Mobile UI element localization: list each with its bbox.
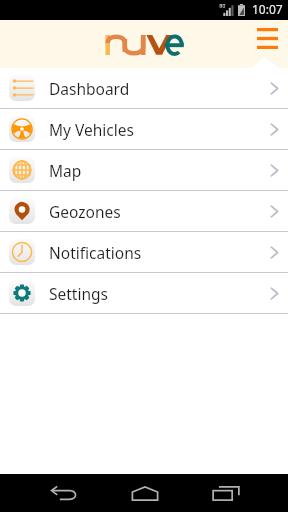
button[interactable]: Settings — [0, 273, 288, 314]
button[interactable]: Recents — [205, 480, 246, 506]
button[interactable]: Notifications — [0, 232, 288, 273]
staticText: Notifications — [49, 242, 142, 263]
button[interactable]: My Vehicles — [0, 109, 288, 150]
staticText: My Vehicles — [49, 119, 134, 140]
button[interactable]: Home — [124, 480, 165, 506]
button[interactable]: Map — [0, 150, 288, 191]
staticText: Geozones — [49, 201, 121, 222]
button[interactable]: Back — [43, 480, 84, 506]
staticText: Map — [49, 160, 82, 181]
button[interactable]: Geozones — [0, 191, 288, 232]
staticText: Dashboard — [49, 78, 130, 99]
button[interactable]: Menu — [251, 25, 283, 51]
staticText: 10:07 — [252, 1, 283, 17]
staticText: Settings — [49, 283, 108, 304]
button[interactable]: Dashboard — [0, 68, 288, 109]
